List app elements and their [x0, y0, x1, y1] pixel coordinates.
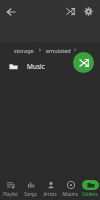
button[interactable]: Music	[0, 58, 100, 74]
staticText: Music	[27, 62, 45, 71]
staticText: storage	[14, 47, 34, 54]
button[interactable]: Folders	[80, 177, 100, 200]
button[interactable]: Back	[3, 4, 19, 20]
button[interactable]: storage	[13, 46, 35, 55]
button[interactable]: Playlist	[0, 177, 20, 200]
staticText: Folders	[82, 191, 98, 197]
button[interactable]: Settings	[80, 3, 97, 20]
staticText: emulated	[46, 47, 71, 54]
staticText: Artists	[43, 191, 57, 197]
button[interactable]: emulated	[45, 46, 72, 55]
button[interactable]: Shuffle	[62, 3, 79, 20]
staticText: Songs	[24, 191, 37, 197]
button[interactable]: Albums	[60, 177, 80, 200]
button[interactable]: Artists	[40, 177, 60, 200]
button[interactable]: Songs	[20, 177, 40, 200]
button[interactable]: Shuffle all	[73, 52, 94, 73]
staticText: Playlist	[3, 191, 18, 197]
staticText: Albums	[62, 191, 78, 197]
